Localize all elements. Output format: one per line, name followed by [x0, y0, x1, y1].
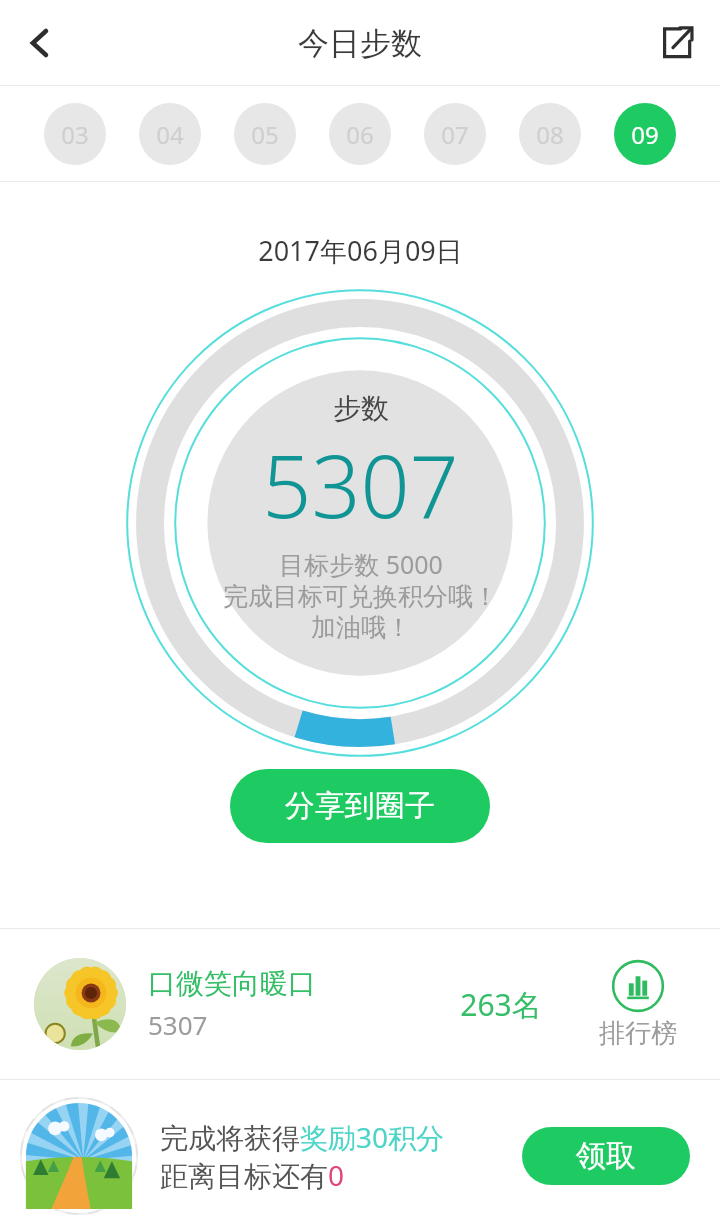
staticText: 步数 — [333, 391, 389, 426]
button[interactable]: 领取 — [522, 1127, 690, 1185]
staticText: 03 — [61, 118, 89, 151]
staticText: 09 — [631, 118, 659, 151]
staticText: 今日步数 — [298, 24, 422, 63]
button[interactable]: 分享到圈子 — [230, 769, 490, 843]
button[interactable]: 05 — [234, 103, 296, 165]
staticText: 排行榜 — [599, 1017, 677, 1050]
staticText: 加油哦！ — [311, 612, 411, 643]
button[interactable]: 07 — [424, 103, 486, 165]
button[interactable]: Back — [8, 11, 72, 75]
staticText: 08 — [536, 118, 564, 151]
button[interactable]: 09 — [614, 103, 676, 165]
button[interactable]: 08 — [519, 103, 581, 165]
staticText: 完成将获得奖励30积分 — [160, 1118, 445, 1156]
button[interactable]: 排行榜 — [590, 959, 686, 1050]
staticText: 04 — [156, 118, 184, 151]
button[interactable]: Share — [644, 11, 708, 75]
staticText: 目标步数 5000 — [279, 547, 443, 581]
staticText: 263名 — [460, 984, 542, 1025]
staticText: 07 — [441, 118, 469, 151]
staticText: 分享到圈子 — [285, 787, 435, 825]
button[interactable]: 口微笑向暖口 — [0, 929, 720, 1079]
staticText: 5307 — [148, 1007, 208, 1042]
staticText: 5307 — [262, 426, 459, 543]
staticText: 2017年06月09日 — [258, 232, 463, 269]
staticText: 口微笑向暖口 — [148, 966, 316, 1001]
button[interactable]: 06 — [329, 103, 391, 165]
staticText: 距离目标还有0 — [160, 1156, 345, 1194]
staticText: 05 — [251, 118, 279, 151]
staticText: 完成目标可兑换积分哦！ — [223, 581, 498, 612]
button[interactable]: 03 — [44, 103, 106, 165]
button[interactable]: 04 — [139, 103, 201, 165]
staticText: 06 — [346, 118, 374, 151]
staticText: 领取 — [576, 1137, 636, 1175]
